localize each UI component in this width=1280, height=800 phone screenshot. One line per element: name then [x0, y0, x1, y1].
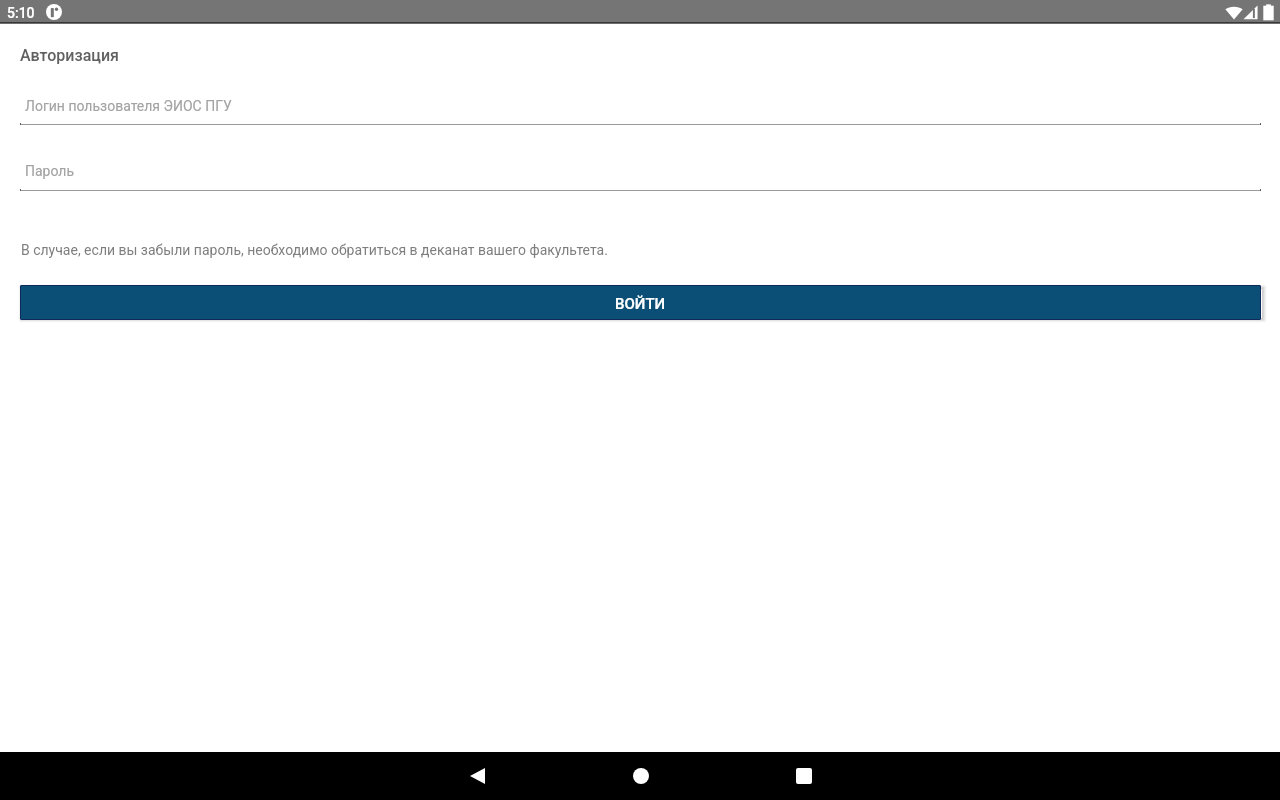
- staticText: Авторизация: [20, 46, 119, 65]
- button[interactable]: ВОЙТИ: [21, 286, 1260, 319]
- staticText: 5:10: [7, 5, 35, 21]
- button[interactable]: Recent apps: [722, 752, 885, 800]
- button[interactable]: Back: [396, 752, 559, 800]
- staticText: Логин пользователя ЭИОС ПГУ: [25, 98, 232, 114]
- button[interactable]: Логин пользователя ЭИОС ПГУ: [20, 96, 1261, 125]
- staticText: В случае, если вы забыли пароль, необход…: [21, 242, 608, 258]
- button[interactable]: Home: [559, 752, 722, 800]
- button[interactable]: Пароль: [20, 161, 1261, 191]
- staticText: ВОЙТИ: [615, 295, 666, 313]
- staticText: Пароль: [25, 163, 75, 179]
